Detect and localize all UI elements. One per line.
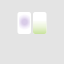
button[interactable] xyxy=(17,12,31,34)
button[interactable] xyxy=(33,12,46,34)
